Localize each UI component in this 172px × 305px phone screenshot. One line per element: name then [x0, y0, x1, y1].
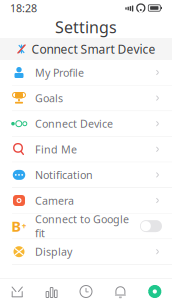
staticText: Camera — [35, 193, 74, 208]
staticText: Notification — [35, 168, 93, 182]
button[interactable]: Display — [0, 239, 172, 265]
button[interactable]: Camera — [0, 188, 172, 214]
button[interactable]: Home — [0, 278, 34, 305]
staticText: My Profile — [35, 65, 84, 80]
staticText: Goals — [35, 91, 63, 105]
button[interactable]: Stats — [34, 278, 69, 305]
staticText: + — [22, 221, 27, 231]
staticText: Connect to Google fit — [35, 212, 129, 240]
button[interactable]: My Profile — [0, 60, 172, 86]
staticText: B — [11, 216, 21, 236]
button[interactable]: History — [69, 278, 103, 305]
button[interactable]: Alerts — [103, 278, 138, 305]
button[interactable]: Settings — [138, 278, 172, 305]
staticText: Find Me — [35, 142, 77, 156]
button[interactable]: Notification — [0, 162, 172, 188]
button[interactable]: Find Me — [0, 137, 172, 162]
button[interactable]: Goals — [0, 86, 172, 111]
button[interactable]: Connect Smart Device — [0, 38, 172, 60]
staticText: Settings — [55, 16, 117, 38]
staticText: Connect Device — [35, 117, 113, 131]
button[interactable]: B — [0, 214, 172, 239]
staticText: Connect Smart Device — [31, 41, 155, 57]
staticText: Display — [35, 245, 72, 259]
staticText: 18:28 — [10, 1, 37, 15]
button[interactable]: Connect Device — [0, 111, 172, 137]
